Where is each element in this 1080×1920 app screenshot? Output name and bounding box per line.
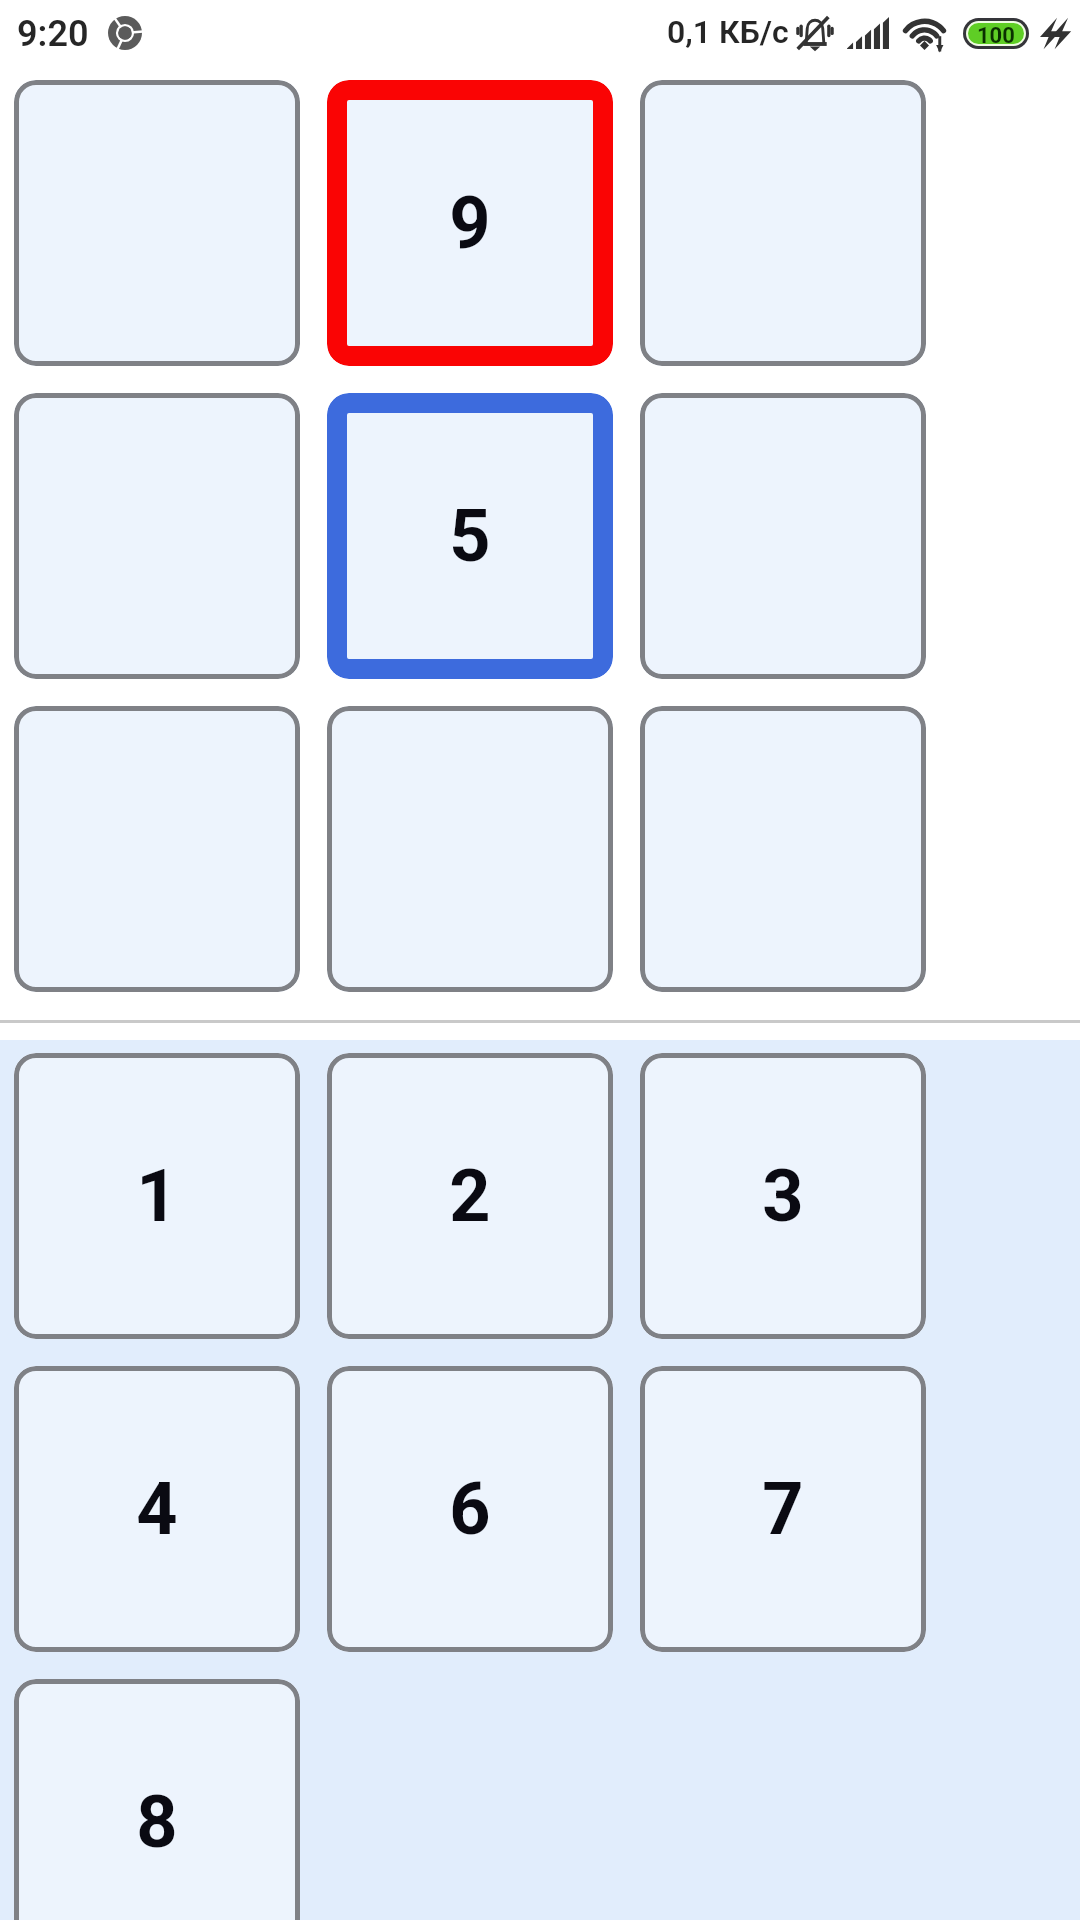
button[interactable]: Empty cell [14,393,300,679]
button[interactable]: Tile 8 [14,1679,300,1920]
staticText: 0,1 КБ/с [667,13,789,51]
staticText: 7 [762,1467,804,1551]
staticText: 1 [136,1154,178,1238]
staticText: 3 [762,1154,804,1238]
other: Chrome [108,16,142,50]
staticText: 5 [449,494,491,578]
button[interactable]: Empty cell [14,706,300,992]
button[interactable]: Tile 2 [327,1053,613,1339]
button[interactable]: Empty cell [14,80,300,366]
other: Charging [1040,16,1069,50]
button[interactable]: Empty cell [640,393,926,679]
other: Wi-Fi [903,13,946,53]
other: Silent mode [797,13,833,53]
staticText: 8 [136,1780,178,1864]
button[interactable]: Tile 3 [640,1053,926,1339]
button[interactable]: Tile 4 [14,1366,300,1652]
button[interactable]: Tile 5 [327,393,613,679]
staticText: 2 [449,1154,491,1238]
button[interactable]: Empty cell [327,706,613,992]
button[interactable]: Tile 9 [327,80,613,366]
button[interactable]: Tile 1 [14,1053,300,1339]
other: Signal [847,17,889,49]
staticText: 9:20 [17,13,89,55]
staticText: 6 [449,1467,491,1551]
staticText: 9 [449,181,491,265]
button[interactable]: Tile 6 [327,1366,613,1652]
button[interactable]: Tile 7 [640,1366,926,1652]
staticText: 4 [136,1467,178,1551]
button[interactable]: Empty cell [640,80,926,366]
staticText: 100 [977,23,1015,44]
button[interactable]: Empty cell [640,706,926,992]
